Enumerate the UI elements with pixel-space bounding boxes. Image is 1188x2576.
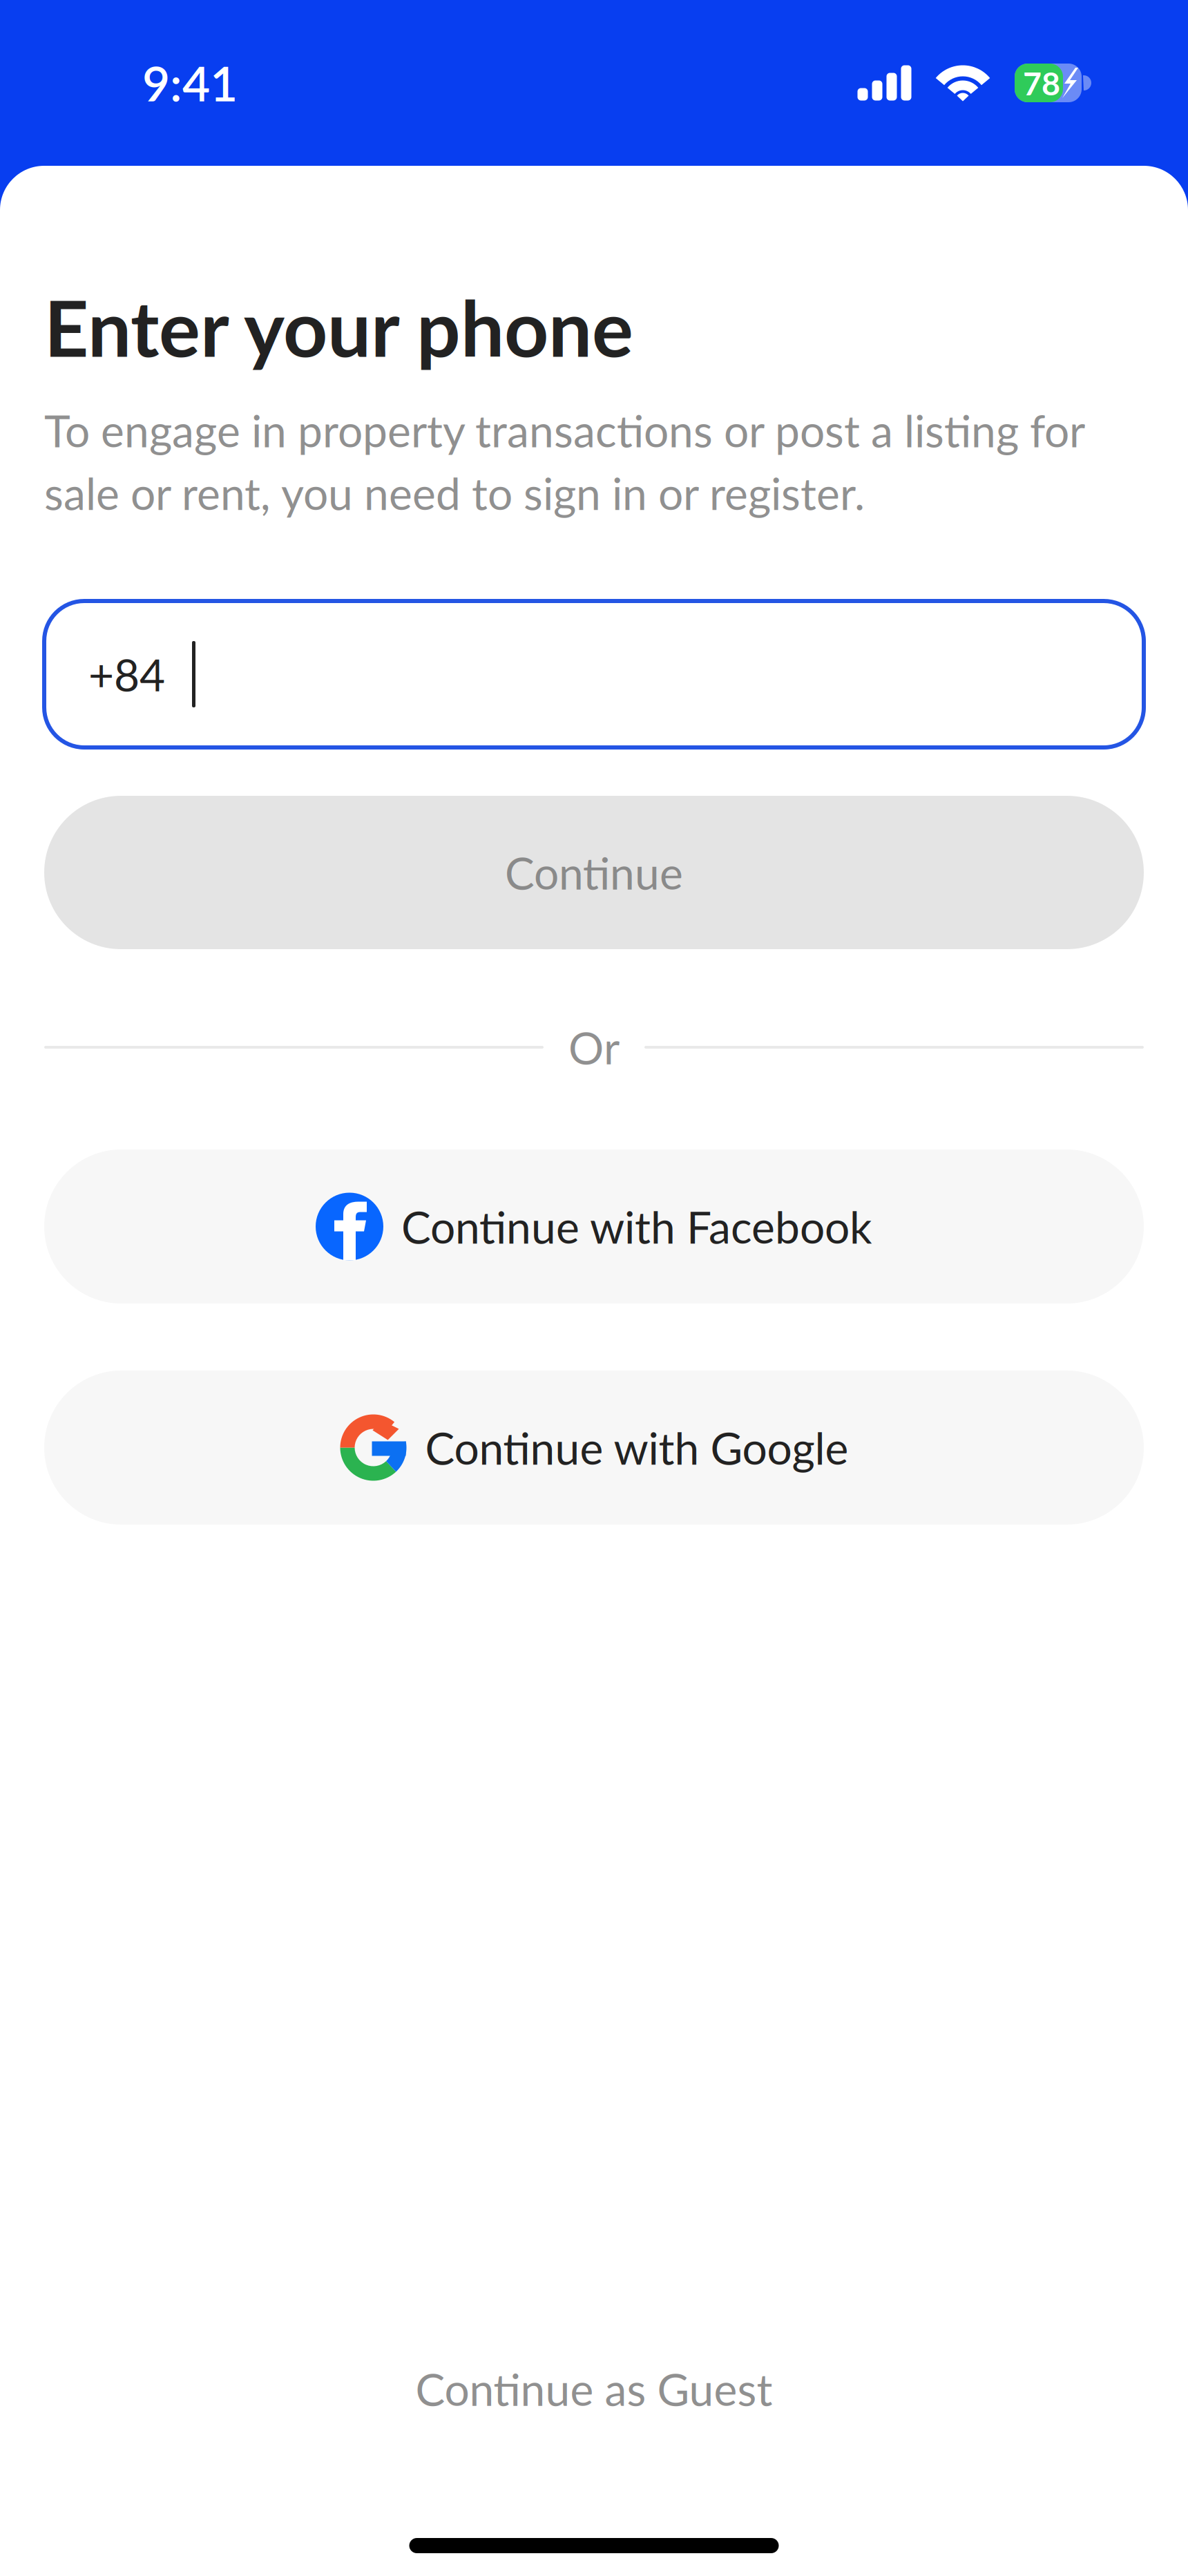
- staticText: Continue with Google: [425, 1421, 849, 1474]
- staticText: 78: [1023, 64, 1060, 102]
- button[interactable]: Continue with Google: [44, 1371, 1144, 1525]
- staticText: Continue with Facebook: [401, 1200, 872, 1253]
- staticText: To engage in property transactions or po…: [44, 404, 1084, 519]
- staticText: Enter your phone: [44, 280, 633, 373]
- staticText: Continue as Guest: [415, 2362, 773, 2415]
- staticText: 9:41: [142, 54, 238, 112]
- staticText: Continue: [505, 846, 683, 899]
- staticText: +84: [88, 648, 165, 701]
- button[interactable]: Continue as Guest: [44, 2351, 1144, 2427]
- button[interactable]: Continue: [44, 796, 1144, 949]
- button[interactable]: Continue with Facebook: [44, 1149, 1144, 1304]
- staticText: Or: [568, 1021, 620, 1074]
